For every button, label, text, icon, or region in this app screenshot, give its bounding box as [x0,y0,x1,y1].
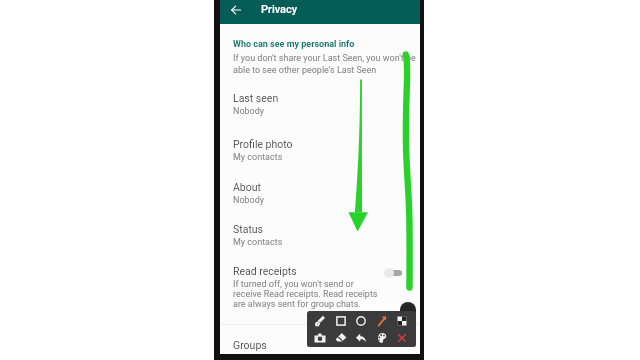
button[interactable]: Undo [351,329,371,347]
staticText: Nobody [233,195,265,206]
staticText: Privacy [261,3,298,16]
button[interactable]: Blur [392,312,412,330]
button[interactable]: Brush [310,312,330,330]
staticText: Last seen [233,92,279,104]
staticText: If you don't share your Last Seen, you w… [233,53,416,75]
button[interactable]: Arrow [372,312,392,330]
button[interactable]: Back [226,0,246,20]
staticText: My contacts [233,237,283,248]
button[interactable]: Last seen [220,92,420,135]
button[interactable]: Status [220,223,420,266]
button[interactable]: Ellipse [351,312,371,330]
staticText: About [233,181,261,193]
button[interactable]: Profile photo [220,138,420,181]
button[interactable]: Eraser [331,329,351,347]
staticText: Read receipts [233,265,297,277]
staticText: Profile photo [233,138,293,150]
button[interactable]: Rectangle [331,312,351,330]
button[interactable]: About [220,181,420,224]
button[interactable]: Close [392,329,412,347]
staticText: If turned off, you won't send or receive… [233,279,378,309]
staticText: Nobody [233,106,265,117]
staticText: Groups [233,339,267,351]
button[interactable]: Screenshot [310,329,330,347]
button[interactable]: Colour [372,329,392,347]
staticText: Who can see my personal info [233,39,355,50]
button[interactable]: Read receipts [220,263,420,313]
staticText: Status [233,223,264,235]
staticText: My contacts [233,152,283,163]
